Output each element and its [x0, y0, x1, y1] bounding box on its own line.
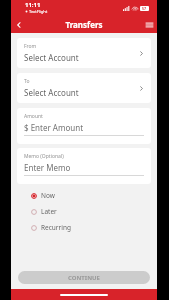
button[interactable]: Recurring	[31, 222, 71, 233]
button[interactable]: Amount	[17, 108, 151, 144]
staticText: Later	[41, 207, 57, 216]
button[interactable]: From	[17, 38, 151, 68]
staticText: 57	[142, 6, 147, 11]
staticText: Transfers	[65, 19, 103, 30]
button[interactable]: Back	[11, 17, 27, 33]
staticText: Select Account	[24, 87, 79, 98]
staticText: Recurring	[41, 223, 71, 232]
button[interactable]: Later	[31, 206, 57, 217]
staticText: Enter Memo	[24, 162, 71, 173]
button[interactable]: Menu	[141, 17, 157, 33]
staticText: Memo (Optional)	[24, 153, 64, 160]
staticText: To	[24, 78, 30, 85]
staticText: Select Account	[24, 52, 79, 63]
staticText: Amount	[24, 113, 43, 120]
staticText: 11:11	[25, 1, 41, 9]
staticText: $ Enter Amount	[24, 122, 84, 133]
staticText: CONTINUE	[68, 274, 100, 282]
staticText: From	[24, 43, 37, 50]
staticText: Now	[41, 191, 55, 200]
button[interactable]: To	[17, 73, 151, 103]
button[interactable]: Now	[31, 190, 55, 201]
button[interactable]: Memo (Optional)	[17, 148, 151, 184]
button[interactable]: CONTINUE	[18, 271, 150, 284]
staticText: TextFlight	[29, 9, 48, 14]
